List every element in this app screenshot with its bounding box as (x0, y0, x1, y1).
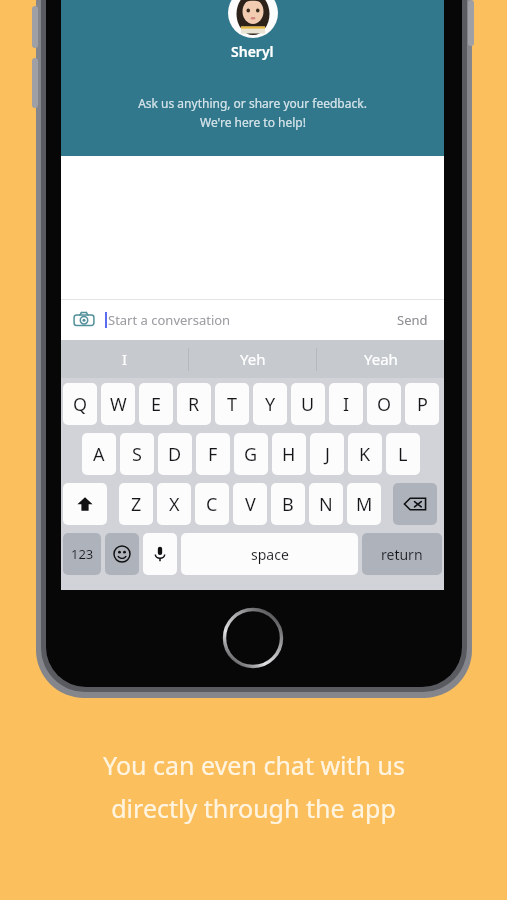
staticText: You can even chat with us (103, 748, 405, 782)
staticText: T (227, 392, 238, 417)
button[interactable]: V (233, 483, 267, 525)
button[interactable]: Camera (61, 300, 444, 340)
staticText: F (208, 442, 218, 467)
button[interactable]: J (310, 433, 344, 475)
button[interactable]: S (120, 433, 154, 475)
staticText: H (282, 442, 296, 467)
staticText: X (169, 492, 180, 517)
button[interactable]: Z (119, 483, 153, 525)
button[interactable]: space (181, 533, 358, 575)
button[interactable]: Camera (71, 307, 97, 333)
button[interactable]: W (101, 383, 135, 425)
button[interactable]: U (291, 383, 325, 425)
button[interactable]: Shift (63, 483, 107, 525)
staticText: A (93, 442, 105, 467)
staticText: O (377, 392, 392, 417)
button[interactable]: F (196, 433, 230, 475)
staticText: Y (265, 392, 276, 417)
staticText: E (151, 392, 162, 417)
staticText: Send (397, 311, 428, 329)
staticText: J (325, 442, 330, 467)
button[interactable]: E (139, 383, 173, 425)
button[interactable]: K (348, 433, 382, 475)
button[interactable]: Dictate (143, 533, 177, 575)
staticText: L (398, 442, 408, 467)
staticText: Z (131, 492, 142, 517)
staticText: We're here to help! (200, 114, 306, 130)
button[interactable]: A (82, 433, 116, 475)
staticText: W (110, 392, 127, 417)
button[interactable]: Y (253, 383, 287, 425)
staticText: Start a conversation (108, 311, 231, 329)
button[interactable]: N (309, 483, 343, 525)
button[interactable]: Emoji (105, 533, 139, 575)
staticText: C (206, 492, 218, 517)
staticText: return (381, 545, 423, 564)
button[interactable]: T (215, 383, 249, 425)
button[interactable]: I (61, 340, 188, 378)
staticText: N (319, 492, 333, 517)
button[interactable]: Send (393, 307, 432, 333)
button[interactable]: H (272, 433, 306, 475)
staticText: S (132, 442, 142, 467)
staticText: U (301, 392, 315, 417)
button[interactable]: Yeah (317, 340, 444, 378)
staticText: G (244, 442, 258, 467)
staticText: M (356, 492, 373, 517)
button[interactable]: O (367, 383, 401, 425)
staticText: B (282, 492, 294, 517)
staticText: I (343, 392, 350, 417)
button[interactable]: M (347, 483, 381, 525)
button[interactable]: D (158, 433, 192, 475)
staticText: P (417, 392, 428, 417)
staticText: R (188, 392, 200, 417)
staticText: Yeah (364, 349, 398, 369)
button[interactable]: G (234, 433, 268, 475)
button[interactable]: P (405, 383, 439, 425)
button[interactable]: L (386, 433, 420, 475)
staticText: D (168, 442, 182, 467)
staticText: Q (73, 392, 88, 417)
button[interactable]: C (195, 483, 229, 525)
staticText: Ask us anything, or share your feedback. (138, 95, 367, 111)
staticText: Sheryl (231, 42, 274, 61)
staticText: K (359, 442, 371, 467)
button[interactable]: Yeh (189, 340, 316, 378)
button[interactable]: return (362, 533, 442, 575)
button[interactable]: 123 (63, 533, 101, 575)
button[interactable]: B (271, 483, 305, 525)
button[interactable]: I (329, 383, 363, 425)
staticText: 123 (71, 545, 94, 563)
button[interactable]: X (157, 483, 191, 525)
staticText: V (245, 492, 256, 517)
staticText: directly through the app (111, 791, 396, 825)
staticText: Yeh (240, 349, 266, 369)
button[interactable]: R (177, 383, 211, 425)
button[interactable]: Backspace (393, 483, 437, 525)
staticText: I (122, 349, 128, 369)
staticText: space (251, 545, 289, 564)
button[interactable]: Q (63, 383, 97, 425)
